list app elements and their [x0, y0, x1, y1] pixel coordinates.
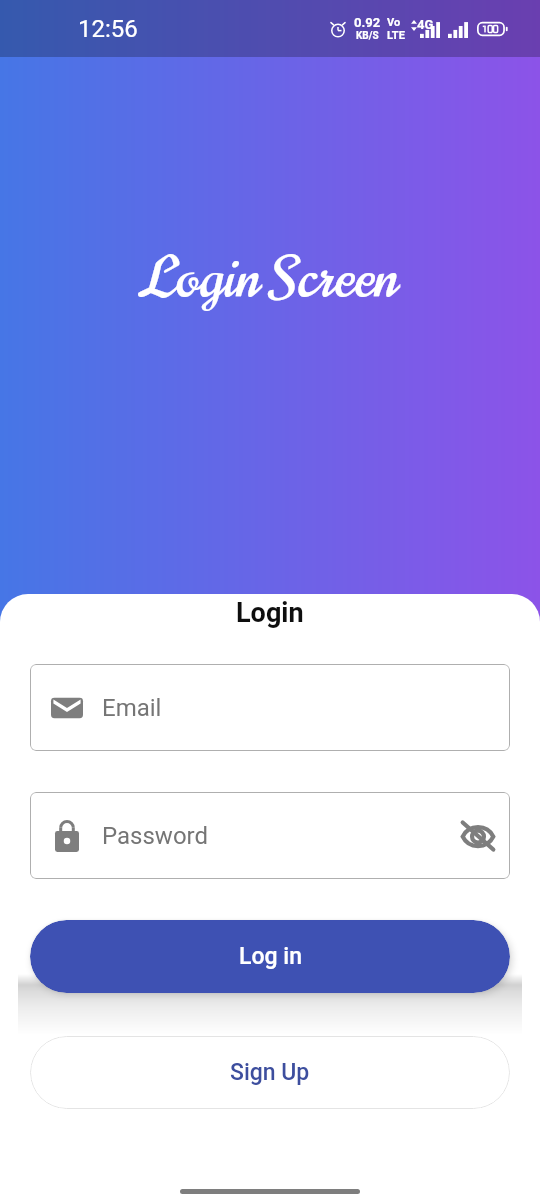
button[interactable]: Sign Up: [30, 1036, 510, 1109]
staticText: Login Screen: [142, 240, 398, 318]
button[interactable]: Log in: [30, 920, 510, 993]
staticText: Sign Up: [230, 1059, 310, 1086]
staticText: Vo: [387, 16, 401, 29]
staticText: KB/S: [356, 30, 379, 42]
button[interactable]: Password: [30, 792, 510, 879]
staticText: Login: [236, 597, 304, 629]
staticText: LTE: [387, 29, 405, 42]
staticText: 0.92: [354, 15, 381, 30]
button[interactable]: Show password: [450, 808, 506, 864]
button[interactable]: Email: [30, 664, 510, 751]
staticText: 4G: [417, 17, 434, 32]
staticText: Email: [102, 694, 162, 722]
staticText: Log in: [239, 943, 302, 970]
staticText: Password: [102, 822, 209, 850]
staticText: 12:56: [78, 15, 138, 43]
